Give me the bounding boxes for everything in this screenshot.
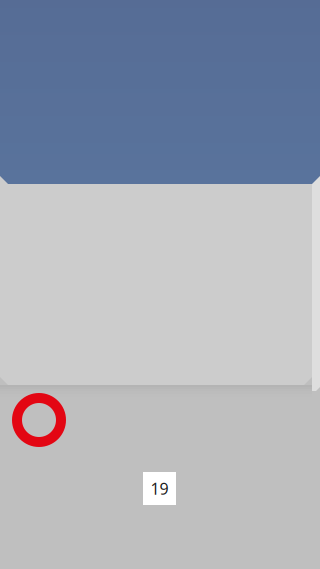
button[interactable]: Record	[17, 398, 61, 442]
staticText: 19	[150, 478, 168, 499]
button[interactable]: 19	[143, 472, 176, 505]
